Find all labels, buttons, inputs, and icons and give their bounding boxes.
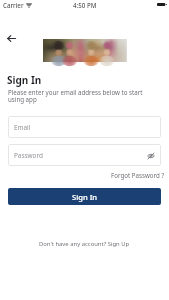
button[interactable]: Back bbox=[4, 31, 19, 46]
staticText: Carrier bbox=[3, 1, 24, 9]
button[interactable]: Don't have any account? Sign Up bbox=[35, 238, 134, 250]
staticText: Forgot Password ? bbox=[111, 171, 165, 179]
staticText: Email bbox=[14, 123, 31, 132]
button[interactable]: Sign In bbox=[8, 188, 161, 205]
staticText: Don't have any account? Sign Up bbox=[39, 240, 130, 248]
button[interactable]: Forgot Password ? bbox=[110, 170, 166, 180]
staticText: Please enter your email address below to… bbox=[8, 88, 148, 104]
button[interactable]: Password bbox=[8, 144, 161, 166]
button[interactable]: Show password bbox=[146, 151, 155, 160]
staticText: Sign In bbox=[72, 192, 98, 202]
staticText: Sign In bbox=[7, 73, 42, 87]
button[interactable]: Email bbox=[8, 116, 161, 138]
staticText: Password bbox=[14, 151, 43, 160]
staticText: 4:50 PM bbox=[73, 1, 97, 9]
